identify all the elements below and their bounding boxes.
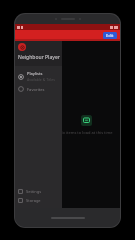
staticText: Playlists	[27, 71, 43, 76]
other: Settings	[18, 189, 23, 194]
staticText: Favorites	[27, 87, 45, 92]
staticText: Neighbour Player	[18, 54, 60, 61]
button[interactable]: Favorites	[15, 84, 62, 94]
staticText: Edit	[106, 33, 114, 38]
other: Favorites	[18, 86, 24, 92]
button[interactable]: Settings	[15, 187, 62, 196]
other: Playlists	[18, 74, 24, 80]
button[interactable]: Storage	[15, 196, 62, 205]
button[interactable]: Edit	[103, 32, 117, 39]
staticText: Settings	[26, 189, 42, 194]
staticText: No items to load at this time	[59, 130, 113, 135]
button[interactable]: Playlists	[15, 69, 62, 84]
staticText: Available & Titles	[27, 77, 55, 82]
staticText: Storage	[26, 198, 41, 203]
other: Storage	[18, 198, 23, 203]
